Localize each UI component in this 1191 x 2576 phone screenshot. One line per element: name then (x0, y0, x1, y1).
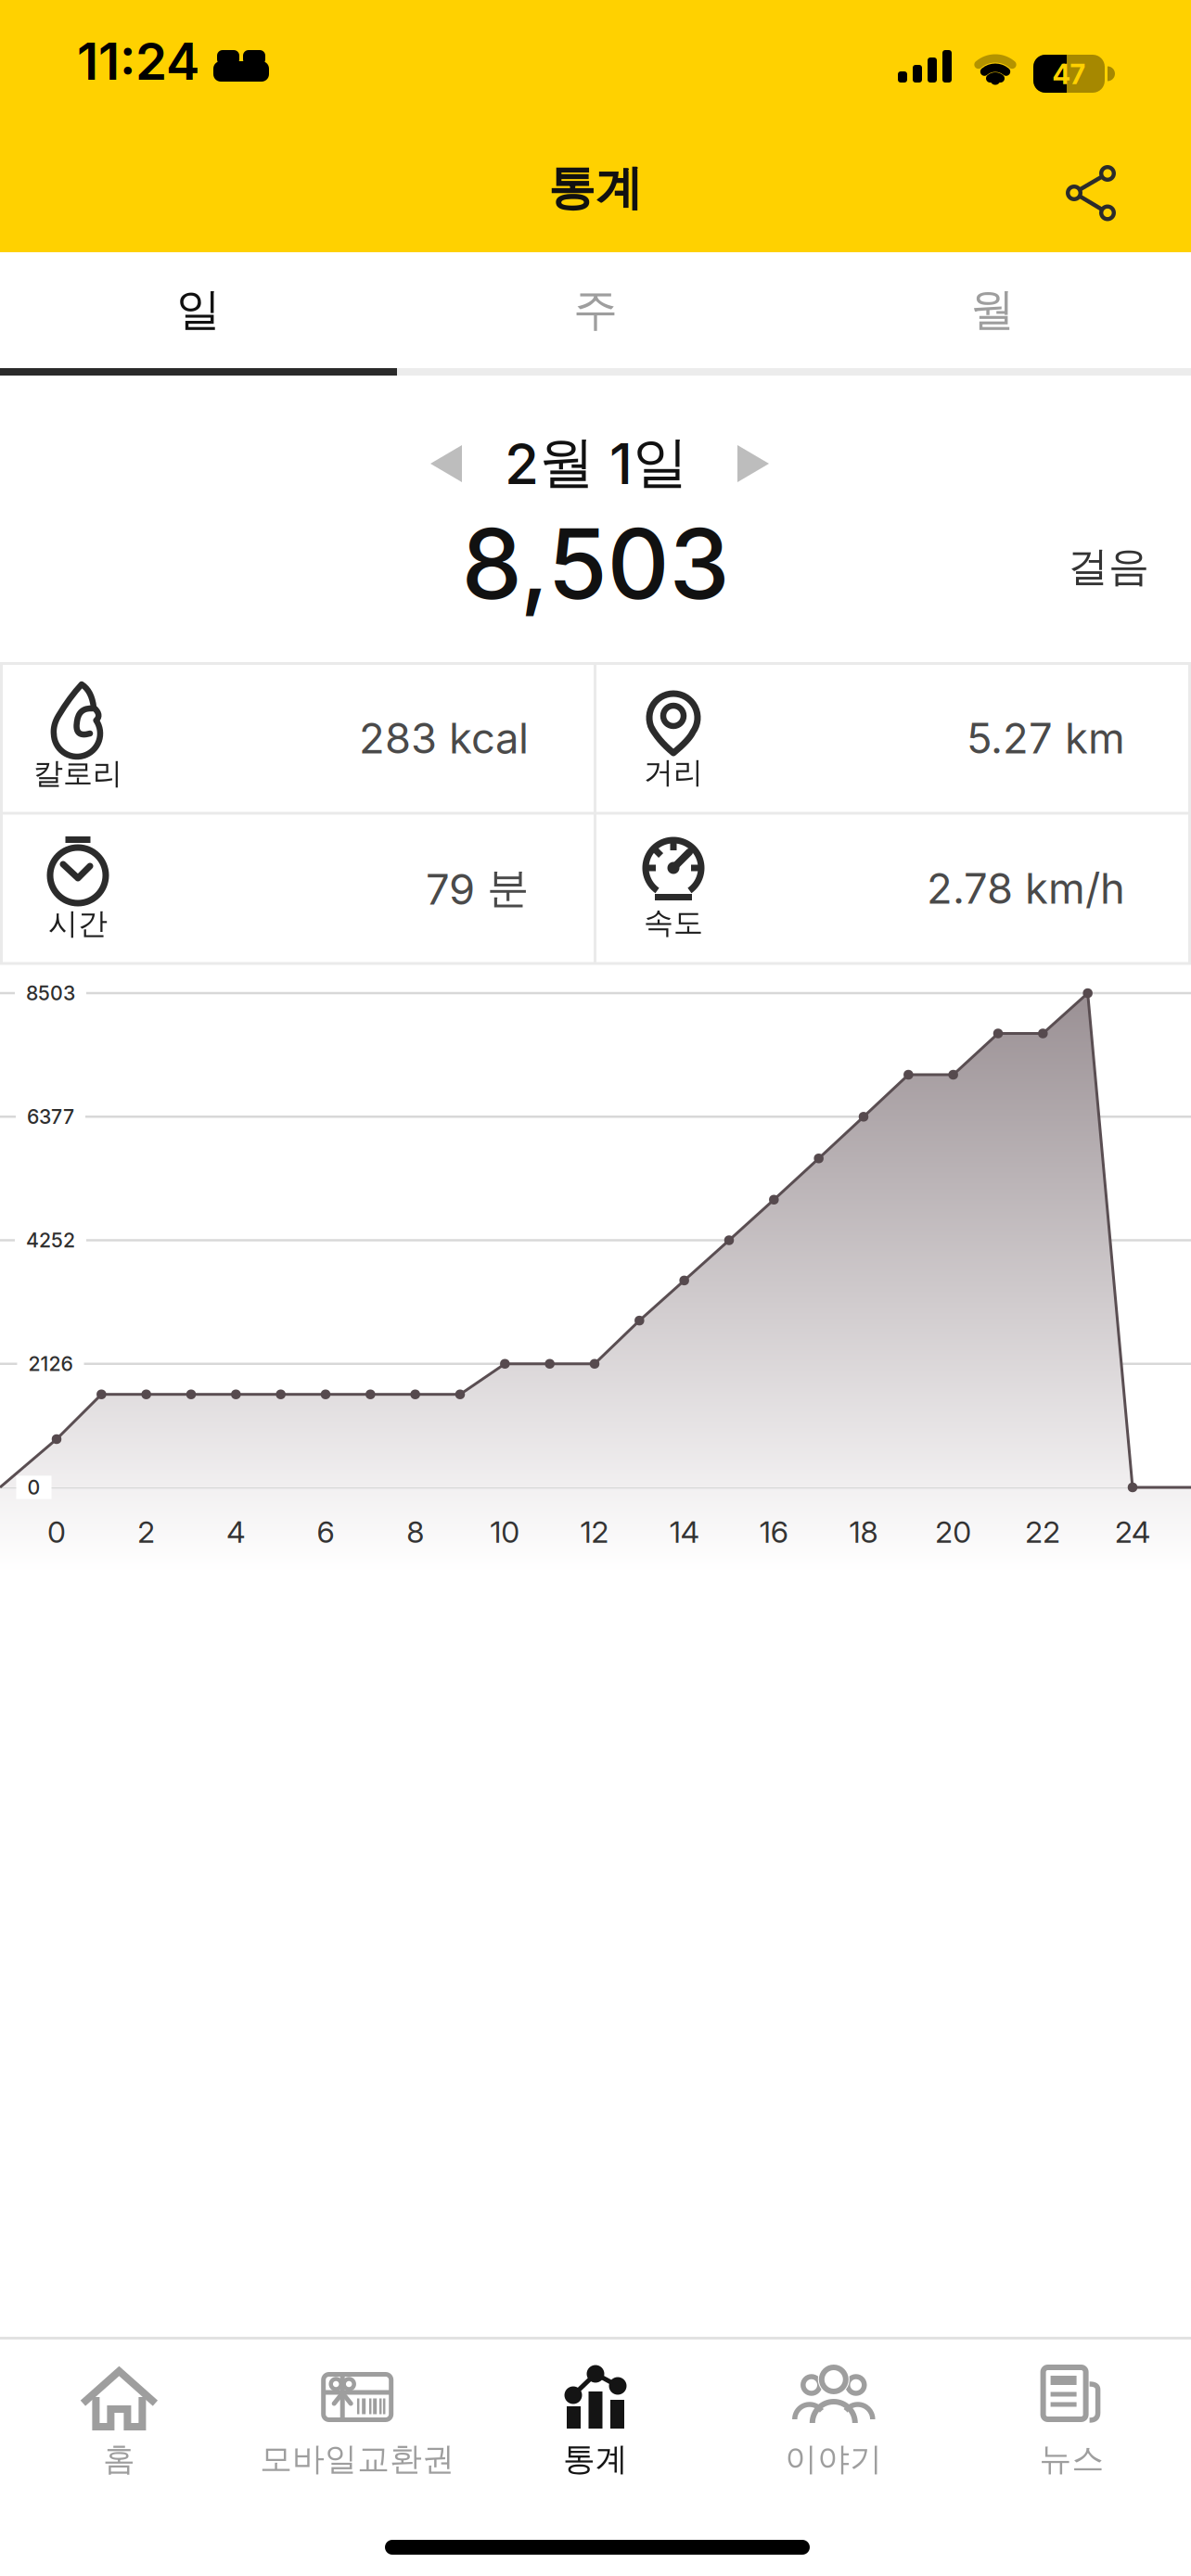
staticText: 8503 (26, 981, 75, 1005)
staticText: 통계 (548, 159, 643, 217)
staticText: 2126 (28, 1352, 73, 1376)
staticText: 거리 (644, 754, 703, 791)
button[interactable]: 이전 날짜 (429, 443, 464, 484)
staticText: 일 (176, 282, 221, 337)
staticText: 79 분 (426, 863, 529, 914)
staticText: 이야기 (785, 2439, 882, 2479)
button[interactable]: 일 (0, 252, 397, 368)
staticText: 2월 1일 (505, 429, 688, 497)
staticText: 속도 (644, 904, 703, 941)
staticText: 10 (490, 1514, 520, 1549)
staticText: 6377 (27, 1105, 74, 1128)
staticText: 0 (27, 1476, 40, 1499)
staticText: 283 kcal (359, 713, 529, 763)
staticText: 6 (317, 1514, 334, 1549)
staticText: 14 (669, 1514, 699, 1549)
staticText: 12 (580, 1514, 609, 1549)
staticText: 8 (406, 1514, 424, 1549)
staticText: 24 (1115, 1514, 1150, 1549)
button[interactable]: 다음 날짜 (736, 443, 771, 484)
staticText: 걸음 (1068, 542, 1149, 592)
staticText: 47 (1052, 58, 1086, 90)
staticText: 모바일교환권 (260, 2439, 455, 2479)
staticText: 통계 (563, 2439, 628, 2479)
staticText: 홈 (103, 2439, 135, 2479)
staticText: 주 (573, 282, 618, 337)
button[interactable]: 이야기 (727, 2338, 940, 2495)
staticText: 월 (970, 282, 1015, 337)
staticText: 18 (849, 1514, 878, 1549)
button[interactable]: 공유 (1058, 159, 1123, 224)
staticText: 4 (227, 1514, 245, 1549)
button[interactable]: 월 (794, 252, 1191, 368)
staticText: 4252 (26, 1229, 75, 1252)
staticText: 2 (137, 1514, 155, 1549)
staticText: 뉴스 (1039, 2439, 1104, 2479)
staticText: 11:24 (77, 31, 199, 91)
staticText: 0 (47, 1514, 66, 1549)
staticText: 2.78 km/h (927, 864, 1125, 913)
button[interactable]: 뉴스 (965, 2338, 1179, 2495)
staticText: 16 (759, 1514, 788, 1549)
button[interactable]: 주 (397, 252, 794, 368)
button[interactable]: 홈 (12, 2338, 226, 2495)
staticText: 22 (1025, 1514, 1060, 1549)
staticText: 시간 (48, 905, 108, 942)
staticText: 칼로리 (33, 755, 122, 792)
staticText: 8,503 (461, 507, 730, 621)
button[interactable]: 통계 (489, 2338, 702, 2495)
staticText: 20 (935, 1514, 971, 1549)
staticText: 5.27 km (967, 713, 1125, 763)
button[interactable]: 모바일교환권 (251, 2338, 464, 2495)
